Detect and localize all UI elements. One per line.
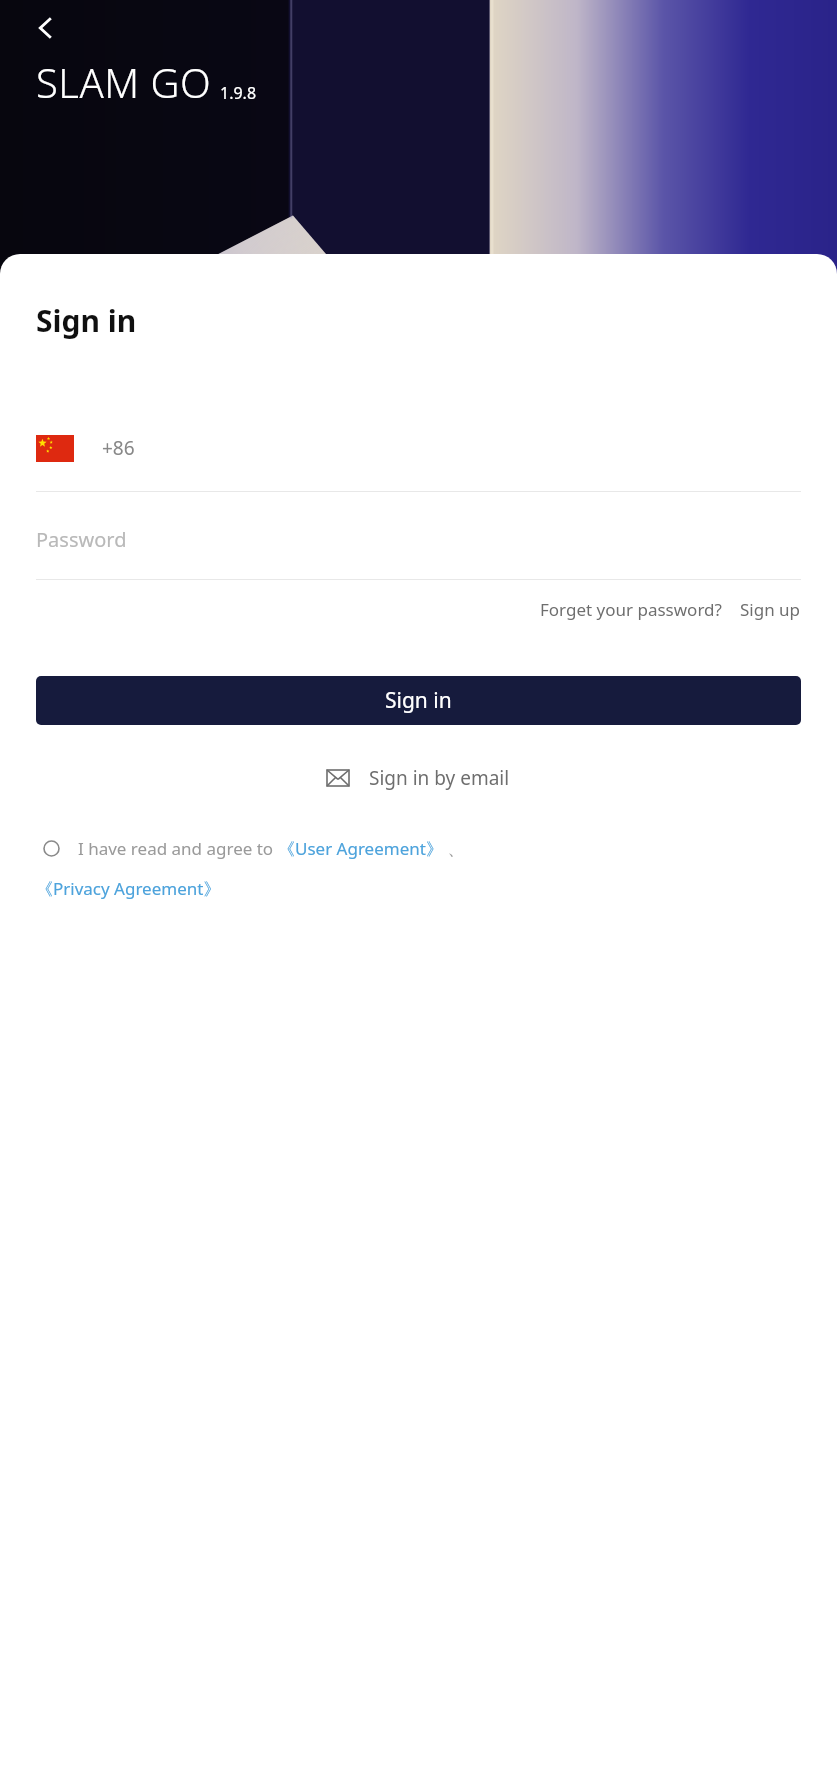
button[interactable]: Password [36, 524, 801, 554]
button[interactable]: +86 [36, 425, 801, 471]
button[interactable]: Forget your password? [540, 590, 722, 629]
staticText: 1.9.8 [220, 82, 257, 104]
staticText: 《User Agreement》 [278, 837, 443, 860]
button[interactable]: Agree to terms [36, 833, 66, 863]
staticText: Forget your password? [540, 598, 722, 621]
button[interactable]: 《User Agreement》 [278, 837, 443, 860]
staticText: +86 [102, 435, 135, 461]
button[interactable]: Sign in by email [36, 765, 801, 791]
button[interactable]: Sign in [36, 676, 801, 725]
staticText: Sign up [740, 598, 801, 621]
staticText: Sign in [385, 686, 452, 715]
staticText: Sign in by email [369, 765, 510, 791]
button[interactable]: Sign up [740, 590, 801, 629]
button[interactable]: 《Privacy Agreement》 [36, 875, 221, 902]
staticText: SLAM GO [36, 55, 212, 109]
staticText: 《Privacy Agreement》 [36, 877, 221, 900]
staticText: Password [36, 526, 127, 553]
button[interactable]: Back [22, 4, 70, 52]
staticText: Sign in [36, 300, 137, 341]
staticText: I have read and agree to [78, 837, 278, 860]
staticText: 、 [443, 837, 465, 860]
